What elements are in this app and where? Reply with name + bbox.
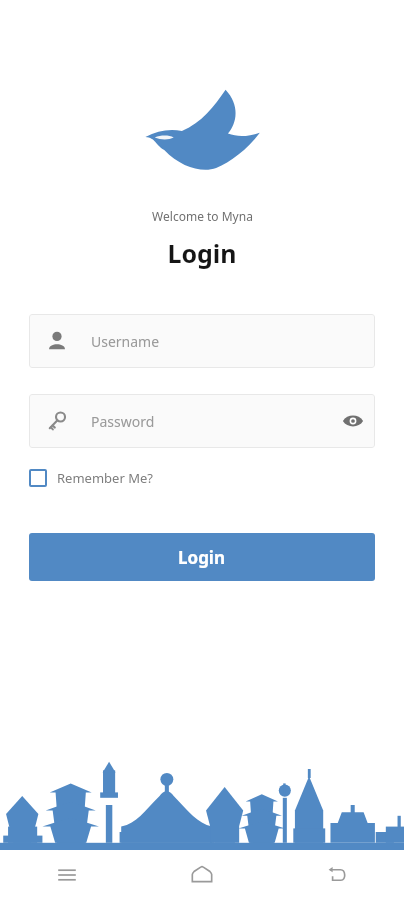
button[interactable]: Login <box>29 533 375 581</box>
button[interactable]: Recent apps <box>0 850 134 900</box>
staticText: Password <box>91 412 331 431</box>
button[interactable]: Back <box>269 850 404 900</box>
staticText: Username <box>91 332 160 351</box>
staticText: Welcome to Myna <box>152 208 253 224</box>
button[interactable]: Home <box>134 850 269 900</box>
button[interactable]: Remember Me? <box>29 469 153 487</box>
staticText: Login <box>167 236 237 270</box>
button[interactable]: Show password <box>331 399 375 443</box>
button[interactable]: Password <box>29 394 375 448</box>
staticText: Login <box>178 546 226 569</box>
button[interactable]: Username <box>29 314 375 368</box>
staticText: Remember Me? <box>57 469 153 487</box>
